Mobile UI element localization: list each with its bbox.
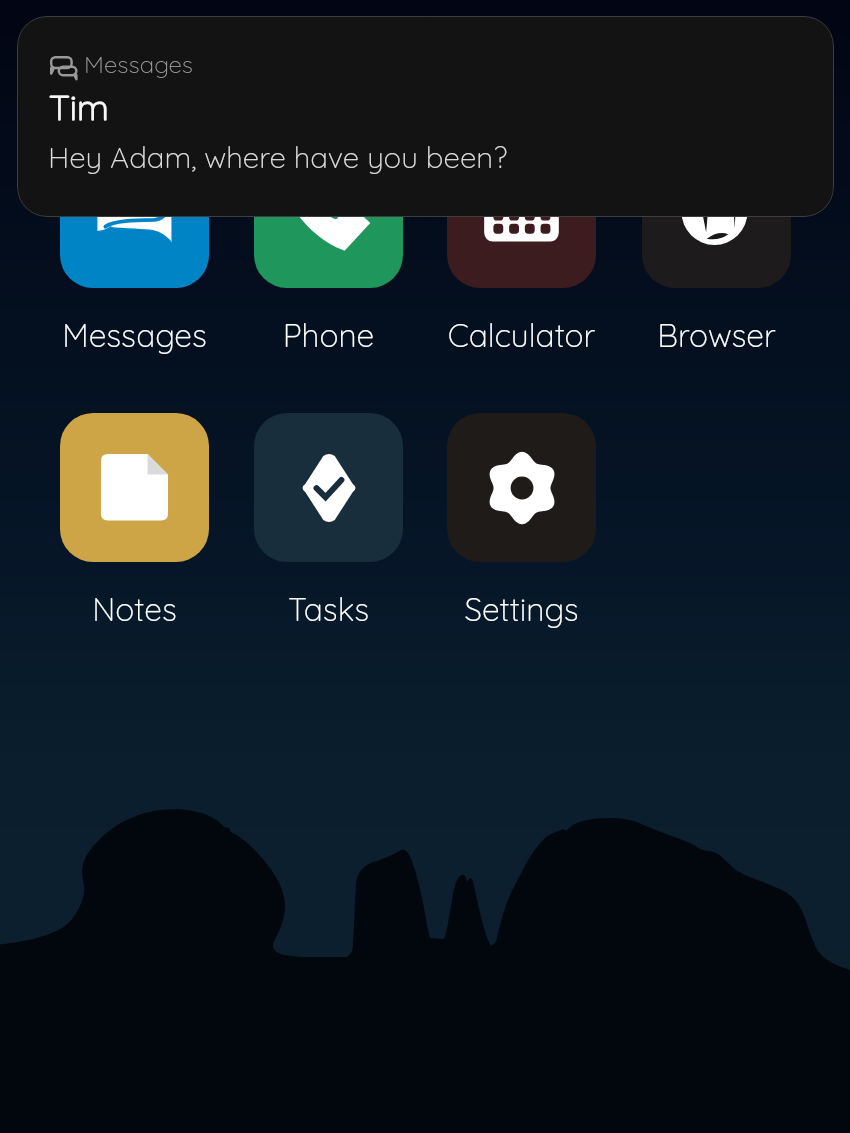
staticText: Messages — [40, 315, 229, 355]
button[interactable]: Calculator — [427, 139, 616, 355]
staticText: Notes — [40, 589, 229, 629]
staticText: Settings — [427, 589, 616, 629]
staticText: Messages — [84, 49, 194, 79]
button[interactable]: Messages — [17, 16, 834, 217]
staticText: Tim — [49, 85, 109, 129]
button[interactable]: Settings — [427, 413, 616, 629]
button[interactable]: Notes — [40, 413, 229, 629]
button[interactable]: Tasks — [234, 413, 423, 629]
button[interactable]: Browser — [622, 139, 811, 355]
button[interactable]: Phone — [234, 139, 423, 355]
staticText: Phone — [234, 315, 423, 355]
staticText: Hey Adam, where have you been? — [48, 138, 508, 175]
staticText: Calculator — [427, 315, 616, 355]
staticText: Tasks — [234, 589, 423, 629]
staticText: Browser — [622, 315, 811, 355]
button[interactable]: Messages — [40, 139, 229, 355]
